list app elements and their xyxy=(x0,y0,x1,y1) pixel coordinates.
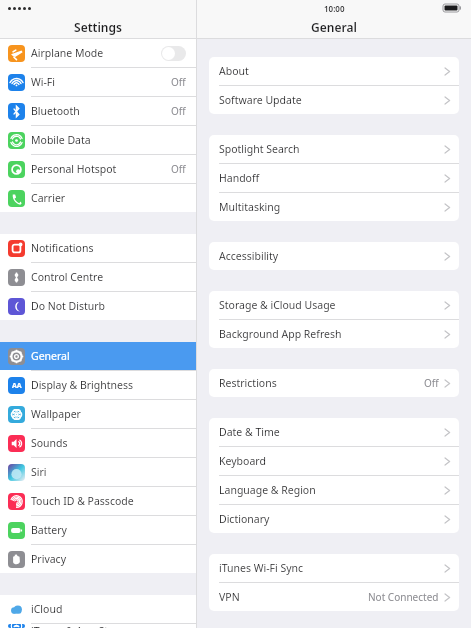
button[interactable]: Privacy xyxy=(0,545,196,573)
button[interactable]: iCloud xyxy=(0,595,196,623)
button[interactable]: Mobile Data xyxy=(0,126,196,154)
button[interactable]: Date & Time xyxy=(209,418,459,446)
button[interactable]: Bluetooth xyxy=(0,97,196,125)
button[interactable]: Software Update xyxy=(209,86,459,114)
button[interactable]: Siri xyxy=(0,458,196,486)
button[interactable]: Language & Region xyxy=(209,476,459,504)
staticText: Handoff xyxy=(219,171,444,185)
button[interactable]: Do Not Disturb xyxy=(0,292,196,320)
staticText: VPN xyxy=(219,590,368,604)
staticText: Off xyxy=(171,162,186,176)
staticText: Storage & iCloud Usage xyxy=(219,298,444,312)
button[interactable]: Restrictions xyxy=(209,369,459,397)
staticText: Restrictions xyxy=(219,376,424,390)
staticText: Settings xyxy=(74,19,122,35)
staticText: Bluetooth xyxy=(31,104,171,118)
staticText: Language & Region xyxy=(219,483,444,497)
button[interactable]: Handoff xyxy=(209,164,459,192)
staticText: Personal Hotspot xyxy=(31,162,171,176)
button[interactable]: General xyxy=(0,342,196,370)
staticText: Privacy xyxy=(31,552,186,566)
staticText: Keyboard xyxy=(219,454,444,468)
button[interactable]: Keyboard xyxy=(209,447,459,475)
staticText: iCloud xyxy=(31,602,186,616)
staticText: Software Update xyxy=(219,93,444,107)
staticText: Off xyxy=(171,104,186,118)
button[interactable]: Wallpaper xyxy=(0,400,196,428)
button[interactable]: Background App Refresh xyxy=(209,320,459,348)
button[interactable]: Storage & iCloud Usage xyxy=(209,291,459,319)
button[interactable]: Airplane Mode xyxy=(0,39,196,67)
staticText: Off xyxy=(171,75,186,89)
staticText: Display & Brightness xyxy=(31,378,186,392)
button[interactable]: Touch ID & Passcode xyxy=(0,487,196,515)
staticText: 10:00 xyxy=(324,3,345,14)
staticText: iTunes & App Store xyxy=(31,624,186,628)
button[interactable]: iTunes & App Store xyxy=(0,624,196,628)
button[interactable]: Multitasking xyxy=(209,193,459,221)
button[interactable]: Sounds xyxy=(0,429,196,457)
staticText: Multitasking xyxy=(219,200,444,214)
staticText: Airplane Mode xyxy=(31,46,161,60)
staticText: General xyxy=(31,349,186,363)
staticText: Battery xyxy=(31,523,186,537)
staticText: AA xyxy=(12,381,22,391)
staticText: Touch ID & Passcode xyxy=(31,494,186,508)
button[interactable]: iTunes Wi-Fi Sync xyxy=(209,554,459,582)
button[interactable]: Dictionary xyxy=(209,505,459,533)
button[interactable]: Accessibility xyxy=(209,242,459,270)
staticText: Notifications xyxy=(31,241,186,255)
button[interactable]: AA xyxy=(0,371,196,399)
button[interactable]: Battery xyxy=(0,516,196,544)
staticText: Dictionary xyxy=(219,512,444,526)
button[interactable]: Control Centre xyxy=(0,263,196,291)
staticText: Sounds xyxy=(31,436,186,450)
staticText: iTunes Wi-Fi Sync xyxy=(219,561,444,575)
button[interactable]: Spotlight Search xyxy=(209,135,459,163)
button[interactable]: Wi-Fi xyxy=(0,68,196,96)
button[interactable]: Personal Hotspot xyxy=(0,155,196,183)
button[interactable]: Carrier xyxy=(0,184,196,212)
staticText: Date & Time xyxy=(219,425,444,439)
staticText: About xyxy=(219,64,444,78)
staticText: Wallpaper xyxy=(31,407,186,421)
staticText: Control Centre xyxy=(31,270,186,284)
staticText: Not Connected xyxy=(368,590,439,604)
staticText: Background App Refresh xyxy=(219,327,444,341)
staticText: Accessibility xyxy=(219,249,444,263)
button[interactable]: VPN xyxy=(209,583,459,611)
staticText: Off xyxy=(424,376,439,390)
staticText: Wi-Fi xyxy=(31,75,171,89)
staticText: Do Not Disturb xyxy=(31,299,186,313)
button[interactable]: About xyxy=(209,57,459,85)
staticText: Siri xyxy=(31,465,186,479)
button[interactable]: Notifications xyxy=(0,234,196,262)
staticText: General xyxy=(311,19,357,35)
staticText: Mobile Data xyxy=(31,133,186,147)
staticText: Spotlight Search xyxy=(219,142,444,156)
staticText: Carrier xyxy=(31,191,186,205)
